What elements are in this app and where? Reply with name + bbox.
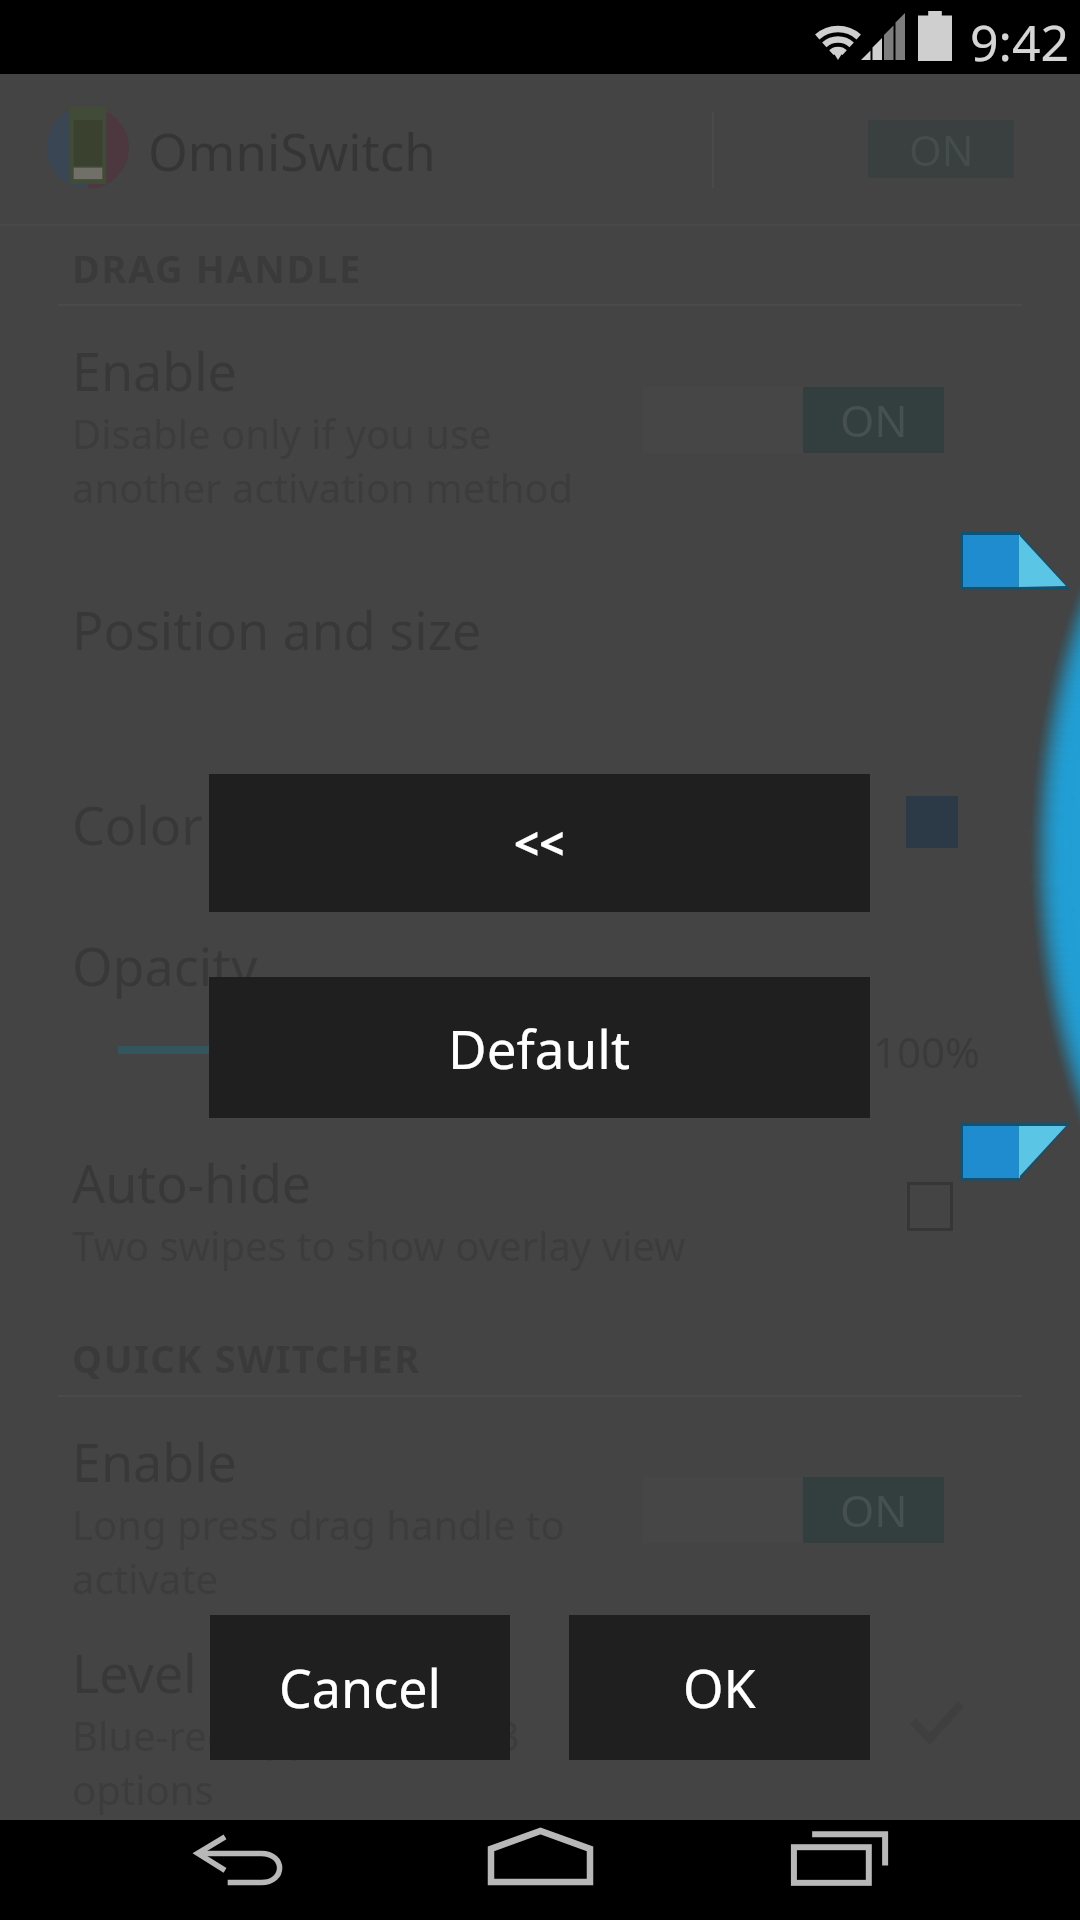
staticText: DRAG HANDLE: [72, 242, 362, 294]
staticText: ON: [840, 390, 908, 450]
staticText: OmniSwitch: [148, 116, 436, 185]
button[interactable]: ON: [643, 1477, 944, 1543]
button[interactable]: OK: [569, 1615, 870, 1760]
staticText: Color: [72, 789, 203, 860]
staticText: Cancel: [279, 1652, 441, 1723]
staticText: Enable: [72, 1426, 237, 1497]
staticText: Position and size: [72, 594, 482, 665]
staticText: <<: [514, 813, 565, 873]
staticText: Auto-hide: [72, 1147, 312, 1218]
staticText: QUICK SWITCHER: [72, 1332, 421, 1384]
staticText: Opacity: [72, 930, 258, 1001]
button[interactable]: Default: [209, 977, 870, 1118]
staticText: ON: [840, 1480, 908, 1540]
staticText: 9:42: [970, 8, 1070, 76]
staticText: OK: [683, 1652, 756, 1723]
staticText: Level: [72, 1637, 197, 1708]
button[interactable]: Recents: [766, 1820, 914, 1920]
button[interactable]: Back: [166, 1820, 314, 1920]
staticText: Default: [448, 1012, 631, 1084]
button[interactable]: ON: [868, 120, 1014, 178]
staticText: 100%: [873, 1023, 980, 1080]
staticText: Enable: [72, 335, 237, 406]
button[interactable]: <<: [209, 774, 870, 912]
staticText: Blue-red appearance - 3: [72, 1708, 520, 1762]
button[interactable]: ON: [643, 387, 944, 453]
staticText: ON: [909, 121, 974, 178]
button[interactable]: Cancel: [210, 1615, 510, 1760]
button[interactable]: Home: [466, 1820, 614, 1920]
